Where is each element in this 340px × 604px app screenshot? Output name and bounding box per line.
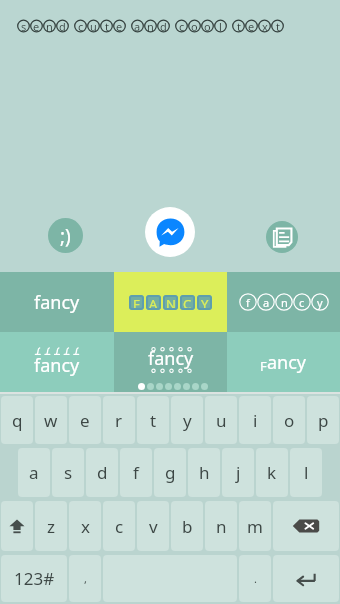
staticText: ancy: [267, 350, 307, 375]
button[interactable]: Messenger: [145, 207, 195, 257]
staticText: t: [105, 19, 109, 33]
button[interactable]: c: [103, 501, 135, 551]
button[interactable]: v: [137, 501, 169, 551]
button[interactable]: n: [205, 501, 237, 551]
staticText: F: [133, 295, 140, 310]
staticText: c: [179, 19, 185, 33]
staticText: o: [191, 19, 198, 33]
staticText: u: [216, 409, 227, 432]
staticText: y: [183, 409, 192, 432]
staticText: m: [247, 515, 263, 538]
button[interactable]: h: [188, 448, 220, 497]
button[interactable]: e: [69, 396, 101, 444]
button[interactable]: 123#: [1, 555, 67, 602]
staticText: o: [204, 19, 211, 33]
staticText: F: [260, 357, 267, 375]
button[interactable]: fancy with dots: [114, 332, 227, 392]
button[interactable]: f: [120, 448, 152, 497]
staticText: a: [134, 19, 141, 33]
button[interactable]: w: [35, 396, 67, 444]
button[interactable]: g: [154, 448, 186, 497]
staticText: t: [237, 19, 241, 33]
staticText: n: [46, 19, 53, 33]
staticText: d: [160, 19, 167, 33]
button[interactable]: .: [239, 555, 271, 602]
staticText: c: [78, 19, 84, 33]
staticText: ;): [60, 223, 71, 249]
staticText: a: [29, 461, 39, 484]
staticText: e: [33, 19, 40, 33]
button[interactable]: a: [18, 448, 50, 497]
button[interactable]: j: [222, 448, 254, 497]
button[interactable]: fancy small caps: [227, 332, 340, 392]
staticText: y: [317, 295, 323, 310]
button[interactable]: p: [307, 396, 339, 444]
staticText: A: [149, 295, 158, 310]
staticText: l: [219, 19, 222, 33]
button[interactable]: Backspace: [273, 501, 339, 551]
staticText: g: [165, 461, 176, 484]
button[interactable]: fancy circled letters: [227, 272, 340, 332]
button[interactable]: Shift: [1, 501, 33, 551]
staticText: d: [59, 19, 66, 33]
button[interactable]: u: [205, 396, 237, 444]
staticText: x: [262, 19, 268, 33]
staticText: e: [116, 19, 123, 33]
button[interactable]: fancy plain: [0, 272, 114, 332]
button[interactable]: Emoticons: [48, 218, 83, 253]
staticText: i: [253, 409, 258, 432]
staticText: N: [166, 295, 176, 310]
staticText: z: [47, 515, 55, 538]
staticText: k: [267, 461, 277, 484]
staticText: t: [150, 409, 157, 432]
button[interactable]: t: [137, 396, 169, 444]
button[interactable]: fancy boxed letters: [114, 272, 227, 332]
staticText: s: [21, 19, 27, 33]
staticText: v: [149, 515, 158, 538]
staticText: s: [64, 461, 73, 484]
staticText: o: [284, 409, 295, 432]
staticText: t: [276, 19, 280, 33]
staticText: x: [81, 515, 90, 538]
button[interactable]: Copy text: [266, 221, 298, 253]
button[interactable]: x: [69, 501, 101, 551]
button[interactable]: o: [273, 396, 305, 444]
staticText: .: [254, 571, 257, 586]
staticText: l: [304, 461, 309, 484]
staticText: Y: [201, 295, 209, 310]
button[interactable]: m: [239, 501, 271, 551]
staticText: f: [246, 295, 250, 310]
button[interactable]: q: [1, 396, 33, 444]
staticText: fancy: [34, 290, 80, 315]
staticText: C: [183, 295, 192, 310]
staticText: fancy: [34, 353, 80, 378]
button[interactable]: z: [35, 501, 67, 551]
staticText: d: [97, 461, 108, 484]
staticText: b: [182, 515, 193, 538]
button[interactable]: k: [256, 448, 288, 497]
staticText: r: [115, 409, 123, 432]
staticText: e: [248, 19, 255, 33]
button[interactable]: r: [103, 396, 135, 444]
button[interactable]: s: [52, 448, 84, 497]
staticText: n: [281, 295, 288, 310]
staticText: ,: [84, 571, 87, 586]
button[interactable]: ,: [69, 555, 101, 602]
staticText: e: [80, 409, 90, 432]
staticText: h: [199, 461, 210, 484]
staticText: a: [263, 295, 270, 310]
button[interactable]: Enter: [273, 555, 339, 602]
staticText: u: [90, 19, 97, 33]
staticText: n: [147, 19, 154, 33]
button[interactable]: b: [171, 501, 203, 551]
staticText: c: [299, 295, 305, 310]
button[interactable]: d: [86, 448, 118, 497]
button[interactable]: y: [171, 396, 203, 444]
button[interactable]: fancy with marks: [0, 332, 114, 392]
staticText: n: [216, 515, 227, 538]
button[interactable]: l: [290, 448, 322, 497]
staticText: w: [44, 409, 58, 432]
button[interactable]: i: [239, 396, 271, 444]
staticText: c: [115, 515, 124, 538]
